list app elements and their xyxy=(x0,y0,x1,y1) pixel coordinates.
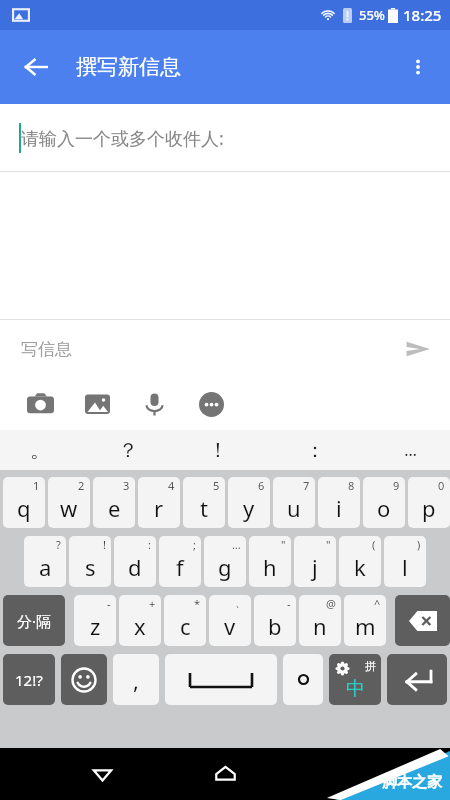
staticText: 请输入一个或多个收件人: xyxy=(21,126,224,151)
button[interactable]: Back xyxy=(80,752,124,796)
staticText: 3 xyxy=(123,478,130,493)
button[interactable]: Home xyxy=(203,752,247,796)
staticText: " xyxy=(281,537,286,552)
button[interactable]: , xyxy=(113,654,159,705)
button[interactable]: - xyxy=(254,595,296,646)
staticText: ? xyxy=(56,537,61,552)
staticText: h xyxy=(263,552,277,582)
button[interactable]: 0 xyxy=(408,477,450,528)
button[interactable]: 4 xyxy=(138,477,180,528)
staticText: 1 xyxy=(33,478,40,493)
staticText: i xyxy=(336,493,342,523)
staticText: t xyxy=(200,493,208,523)
staticText: - xyxy=(107,596,111,611)
button[interactable]: ^ xyxy=(344,595,386,646)
staticText: ) xyxy=(417,537,421,552)
button[interactable]: More attachments xyxy=(189,382,233,426)
button[interactable]: @ xyxy=(299,595,341,646)
staticText: g xyxy=(218,552,232,582)
staticText: 6 xyxy=(258,478,265,493)
staticText: 分·隔 xyxy=(17,611,52,631)
button[interactable]: 9 xyxy=(363,477,405,528)
button[interactable]: - xyxy=(74,595,116,646)
button[interactable]: 、 xyxy=(209,595,251,646)
button[interactable]: ？ xyxy=(98,430,158,470)
staticText: 中 xyxy=(346,677,365,701)
staticText: ( xyxy=(372,537,376,552)
button[interactable]: 2 xyxy=(48,477,90,528)
button[interactable]: 。 xyxy=(10,430,70,470)
staticText: 12!? xyxy=(15,670,43,690)
button[interactable]: Voice message xyxy=(132,382,176,426)
button[interactable]: ! xyxy=(69,536,111,587)
staticText: e xyxy=(108,493,121,523)
staticText: … xyxy=(404,439,417,461)
button[interactable]: Input method settings xyxy=(329,654,381,705)
button[interactable]: ? xyxy=(24,536,66,587)
button[interactable]: * xyxy=(164,595,206,646)
button[interactable]: Camera xyxy=(18,382,62,426)
staticText: f xyxy=(176,552,184,582)
button[interactable]: … xyxy=(380,430,440,470)
button[interactable]: … xyxy=(204,536,246,587)
staticText: u xyxy=(287,493,301,523)
button[interactable]: " xyxy=(249,536,291,587)
button[interactable]: 1 xyxy=(3,477,45,528)
staticText: w xyxy=(60,493,78,523)
staticText: b xyxy=(268,611,282,641)
button[interactable]: 7 xyxy=(273,477,315,528)
staticText: 0 xyxy=(438,478,445,493)
button[interactable] xyxy=(283,654,323,705)
button[interactable]: : xyxy=(114,536,156,587)
button[interactable]: Emoji xyxy=(61,654,107,705)
staticText: j xyxy=(312,552,318,582)
staticText: 8 xyxy=(348,478,355,493)
button[interactable]: 8 xyxy=(318,477,360,528)
button[interactable]: Backspace xyxy=(395,595,450,646)
button[interactable]: " xyxy=(294,536,336,587)
staticText: c xyxy=(180,611,191,641)
button[interactable]: 12!? xyxy=(3,654,55,705)
staticText: + xyxy=(149,596,156,611)
button[interactable]: + xyxy=(119,595,161,646)
button[interactable]: ： xyxy=(285,430,345,470)
button[interactable]: 分·隔 xyxy=(3,595,65,646)
staticText: * xyxy=(194,596,201,611)
button[interactable]: Send xyxy=(396,327,440,371)
staticText: l xyxy=(402,552,408,582)
button[interactable]: 请输入一个或多个收件人: xyxy=(0,104,450,172)
button[interactable]: Back xyxy=(14,45,58,89)
staticText: p xyxy=(422,493,436,523)
button[interactable]: ) xyxy=(384,536,426,587)
button[interactable]: ; xyxy=(159,536,201,587)
staticText: 5 xyxy=(213,478,220,493)
staticText: ; xyxy=(193,537,196,552)
staticText: 18:25 xyxy=(403,5,442,25)
staticText: 4 xyxy=(168,478,175,493)
button[interactable]: 写信息 xyxy=(0,320,450,378)
button[interactable]: 5 xyxy=(183,477,225,528)
staticText: n xyxy=(313,611,327,641)
button[interactable]: 6 xyxy=(228,477,270,528)
staticText: q xyxy=(17,493,31,523)
staticText: 7 xyxy=(303,478,310,493)
staticText: ？ xyxy=(118,438,138,463)
staticText: 9 xyxy=(393,478,400,493)
staticText: 撰写新信息 xyxy=(76,54,181,80)
button[interactable]: Enter xyxy=(387,654,447,705)
staticText: ！ xyxy=(208,438,228,463)
button[interactable]: Gallery xyxy=(75,382,119,426)
staticText: x xyxy=(134,611,146,641)
staticText: s xyxy=(85,552,96,582)
button[interactable]: More options xyxy=(396,45,440,89)
staticText: z xyxy=(90,611,101,641)
button[interactable]: Space xyxy=(165,654,277,705)
staticText: ： xyxy=(305,438,325,463)
button[interactable]: ( xyxy=(339,536,381,587)
staticText: m xyxy=(355,611,376,641)
staticText: 。 xyxy=(30,438,50,463)
staticText: k xyxy=(354,552,366,582)
staticText: o xyxy=(377,493,391,523)
button[interactable]: 3 xyxy=(93,477,135,528)
button[interactable]: ！ xyxy=(188,430,248,470)
